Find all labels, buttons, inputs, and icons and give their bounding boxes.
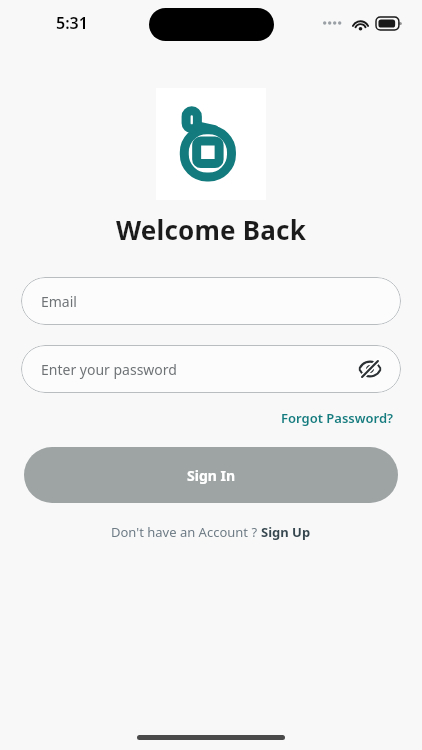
button[interactable]: Forgot Password? — [279, 407, 396, 429]
button[interactable]: Show password — [355, 354, 385, 384]
button[interactable]: Don't have an Account ? — [107, 519, 315, 545]
staticText: Sign In — [187, 466, 236, 485]
staticText: 5:31 — [56, 12, 88, 34]
staticText: Welcome Back — [116, 212, 306, 247]
button[interactable]: Sign In — [24, 447, 398, 503]
button[interactable]: Enter your password — [21, 345, 401, 393]
staticText: Sign Up — [261, 523, 311, 541]
staticText: Don't have an Account ? — [111, 523, 261, 541]
staticText: Email — [41, 292, 77, 311]
button[interactable]: Email — [21, 277, 401, 325]
staticText: Enter your password — [41, 360, 177, 379]
staticText: Forgot Password? — [281, 409, 394, 427]
